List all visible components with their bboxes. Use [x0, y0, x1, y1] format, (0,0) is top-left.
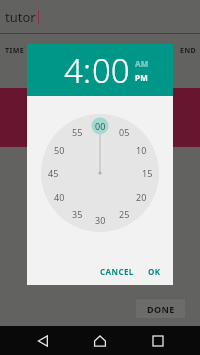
- button[interactable]: DONE: [136, 299, 185, 318]
- button[interactable]: 00: [95, 120, 106, 132]
- staticText: 40: [54, 191, 65, 203]
- staticText: 35: [72, 208, 83, 220]
- staticText: PM: [135, 72, 149, 83]
- staticText: 05: [119, 126, 130, 138]
- button[interactable]: OK: [143, 261, 166, 282]
- button[interactable]: 40: [54, 191, 65, 203]
- staticText: tutor: [5, 8, 36, 26]
- button[interactable]: 35: [72, 208, 83, 220]
- staticText: TIME: [5, 46, 25, 56]
- staticText: 4: [64, 48, 83, 93]
- button[interactable]: 4: [64, 48, 83, 93]
- button[interactable]: 25: [119, 208, 130, 220]
- button[interactable]: 30: [95, 214, 106, 226]
- staticText: END: [180, 46, 197, 56]
- staticText: 00: [95, 120, 106, 132]
- button[interactable]: 00: [92, 48, 130, 93]
- staticText: 15: [142, 167, 153, 179]
- button[interactable]: PM: [135, 72, 149, 83]
- button[interactable]: Recents: [143, 326, 173, 355]
- button[interactable]: TIME: [5, 46, 25, 56]
- button[interactable]: AM: [135, 58, 149, 69]
- button[interactable]: 50: [54, 144, 65, 156]
- staticText: AM: [135, 58, 149, 69]
- button[interactable]: CANCEL: [95, 261, 139, 282]
- button[interactable]: 20: [136, 191, 147, 203]
- button[interactable]: Back: [28, 326, 58, 355]
- button[interactable]: 10: [136, 144, 147, 156]
- button[interactable]: 15: [142, 167, 153, 179]
- button[interactable]: 45: [48, 167, 59, 179]
- button[interactable]: Home: [85, 326, 115, 355]
- staticText: 45: [48, 167, 59, 179]
- staticText: 00: [92, 48, 130, 93]
- staticText: 50: [54, 144, 65, 156]
- staticText: 55: [72, 126, 83, 138]
- button[interactable]: END: [180, 46, 197, 56]
- staticText: 30: [95, 214, 106, 226]
- staticText: OK: [148, 266, 161, 277]
- staticText: 25: [119, 208, 130, 220]
- staticText: 20: [136, 191, 147, 203]
- staticText: 10: [136, 144, 147, 156]
- staticText: CANCEL: [100, 266, 134, 277]
- button[interactable]: 05: [119, 126, 130, 138]
- staticText: DONE: [147, 303, 175, 315]
- staticText: :: [83, 48, 92, 93]
- button[interactable]: 55: [72, 126, 83, 138]
